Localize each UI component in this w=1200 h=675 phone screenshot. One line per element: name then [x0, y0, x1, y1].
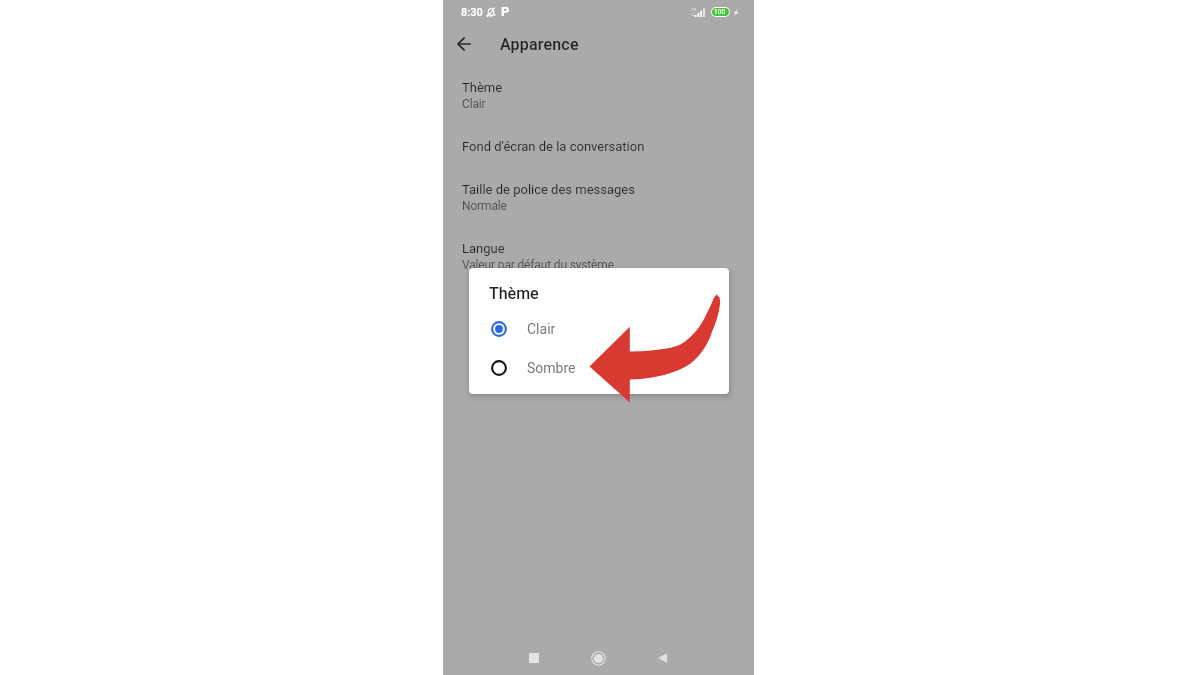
- staticText: P: [501, 4, 510, 19]
- staticText: Clair: [462, 97, 486, 111]
- button[interactable]: Sombre: [469, 351, 729, 385]
- staticText: Thème: [489, 284, 539, 303]
- staticText: Fond d'écran de la conversation: [462, 139, 645, 154]
- staticText: Normale: [462, 199, 507, 213]
- button[interactable]: Back: [449, 29, 479, 59]
- button[interactable]: Langue: [443, 233, 754, 284]
- button[interactable]: Thème: [443, 72, 754, 123]
- button[interactable]: Home: [585, 645, 611, 671]
- staticText: Apparence: [500, 35, 579, 54]
- staticText: 8:30: [461, 6, 483, 19]
- button[interactable]: Back: [649, 645, 675, 671]
- staticText: Langue: [462, 241, 505, 256]
- staticText: Taille de police des messages: [462, 182, 635, 197]
- button[interactable]: Taille de police des messages: [443, 174, 754, 225]
- staticText: Thème: [462, 80, 503, 95]
- staticText: Valeur par défaut du système: [462, 258, 614, 272]
- button[interactable]: Recent apps: [521, 645, 547, 671]
- staticText: Clair: [527, 321, 556, 337]
- button[interactable]: Clair: [469, 312, 729, 346]
- button[interactable]: Fond d'écran de la conversation: [443, 131, 754, 166]
- staticText: Sombre: [527, 360, 576, 376]
- staticText: 100: [714, 8, 726, 16]
